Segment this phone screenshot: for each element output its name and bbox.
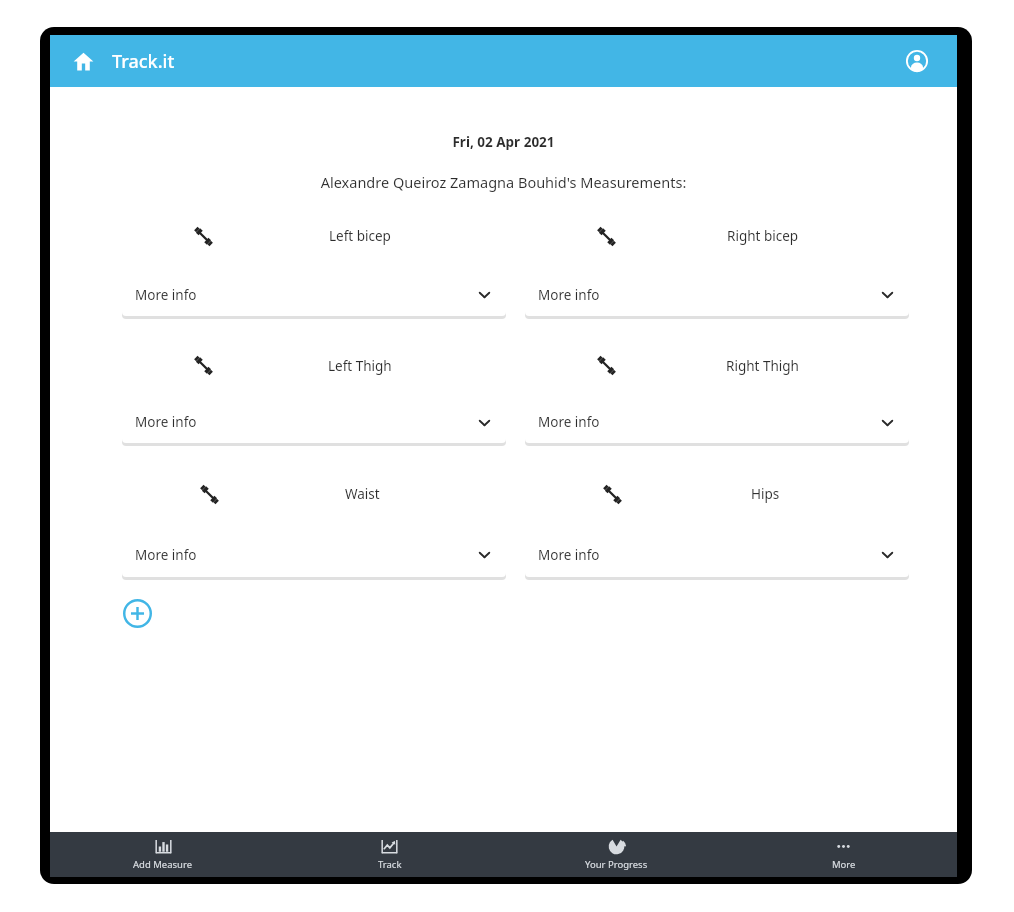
button[interactable]: Add measurement [116, 592, 158, 634]
staticText: Alexandre Queiroz Zamagna Bouhid's Measu… [50, 172, 957, 192]
button[interactable]: More info [525, 273, 909, 316]
staticText: Right bicep [727, 227, 799, 245]
button[interactable]: More [730, 832, 957, 877]
button[interactable]: Waist [122, 465, 506, 577]
button[interactable]: Track [276, 832, 503, 877]
button[interactable]: More info [122, 273, 506, 316]
staticText: More info [538, 413, 600, 431]
staticText: More info [135, 413, 197, 431]
staticText: Track [378, 858, 402, 871]
button[interactable]: Account [897, 41, 937, 81]
staticText: More info [538, 546, 600, 564]
staticText: Waist [345, 485, 380, 503]
button[interactable]: Your Progress [503, 832, 730, 877]
button[interactable]: Left bicep [122, 208, 506, 316]
staticText: Hips [751, 485, 780, 503]
staticText: Left Thigh [328, 357, 392, 375]
staticText: Right Thigh [726, 357, 799, 375]
staticText: More info [538, 286, 600, 304]
button[interactable]: More info [525, 401, 909, 443]
staticText: More [832, 858, 856, 871]
staticText: Add Measure [133, 858, 193, 871]
staticText: More info [135, 286, 197, 304]
button[interactable]: Home [64, 42, 102, 80]
button[interactable]: More info [122, 401, 506, 443]
button[interactable]: More info [525, 532, 909, 577]
button[interactable]: Hips [525, 465, 909, 577]
staticText: More info [135, 546, 197, 564]
button[interactable]: Left Thigh [122, 338, 506, 443]
button[interactable]: More info [122, 532, 506, 577]
staticText: Left bicep [329, 227, 391, 245]
staticText: Track.it [112, 49, 175, 74]
button[interactable]: Right bicep [525, 208, 909, 316]
staticText: Fri, 02 Apr 2021 [50, 133, 957, 151]
button[interactable]: Right Thigh [525, 338, 909, 443]
button[interactable]: Add Measure [50, 832, 276, 877]
staticText: Your Progress [585, 858, 648, 871]
